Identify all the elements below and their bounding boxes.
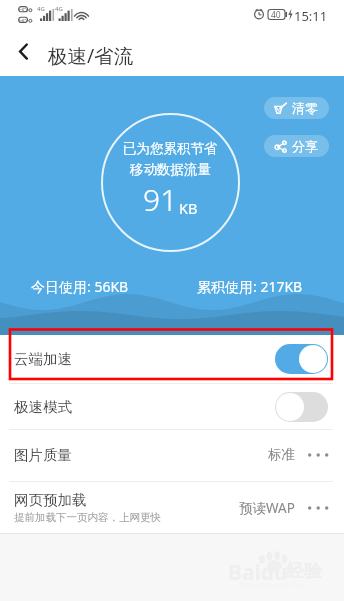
button[interactable]: 分享 [264,135,329,157]
button[interactable]: 图片质量 [0,429,344,480]
staticText: KB [179,198,198,218]
staticText: 4G [55,5,63,13]
staticText: 极速/省流 [48,42,134,69]
button[interactable]: On [275,344,328,374]
staticText: 已为您累积节省 [123,140,218,157]
staticText: 清零 [292,100,318,116]
staticText: 今日使用: 56KB [31,277,129,296]
button[interactable]: 清零 [264,97,329,119]
staticText: 91 [143,179,178,220]
staticText: HD [19,17,28,24]
staticText: 15:11 [294,7,328,25]
staticText: 经验 [286,560,322,583]
staticText: 标准 [268,446,295,463]
staticText: 累积使用: 217KB [197,277,303,296]
button[interactable]: Off [275,392,328,422]
staticText: 分享 [292,138,318,154]
staticText: 40 [271,9,281,21]
staticText: 云端加速 [14,350,275,368]
button[interactable]: 云端加速 [0,335,344,383]
staticText: 提前加载下一页内容，上网更快 [14,511,161,524]
staticText: 4G [37,5,45,13]
staticText: 图片质量 [14,446,72,464]
staticText: Baidu [228,558,288,587]
staticText: 极速模式 [14,398,275,416]
staticText: 网页预加载 [14,491,87,509]
button[interactable]: 网页预加载 [0,482,344,533]
staticText: 移动数据流量 [130,161,211,178]
staticText: 预读WAP [239,499,295,517]
staticText: HD [19,6,28,13]
button[interactable]: Back [10,36,38,64]
button[interactable]: 极速模式 [0,384,344,429]
